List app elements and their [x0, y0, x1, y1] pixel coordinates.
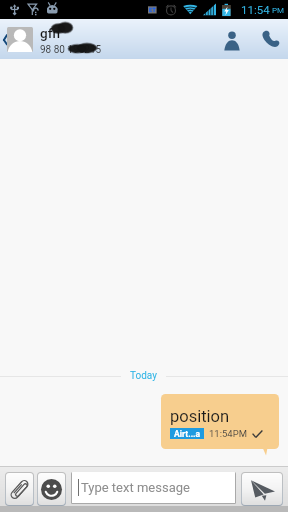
- other: Back: [0, 19, 7, 59]
- staticText: 11:54PM: [209, 428, 247, 439]
- staticText: Airt...a: [174, 429, 201, 439]
- staticText: Today: [130, 370, 157, 382]
- button[interactable]: Type text message: [72, 472, 235, 503]
- staticText: Type text message: [81, 480, 190, 495]
- staticText: 98 80 195215: [40, 44, 102, 56]
- staticText: 11:54: [241, 3, 270, 16]
- button[interactable]: Attach: [6, 473, 33, 505]
- button[interactable]: Call: [253, 19, 288, 59]
- button[interactable]: position: [161, 394, 279, 456]
- button[interactable]: Emoji: [38, 473, 65, 505]
- staticText: PM: [272, 6, 285, 15]
- staticText: position: [170, 407, 230, 426]
- button[interactable]: Send: [242, 473, 282, 505]
- button[interactable]: Contact details: [212, 19, 251, 59]
- staticText: gfn: [40, 25, 60, 41]
- button[interactable]: Back: [0, 19, 112, 59]
